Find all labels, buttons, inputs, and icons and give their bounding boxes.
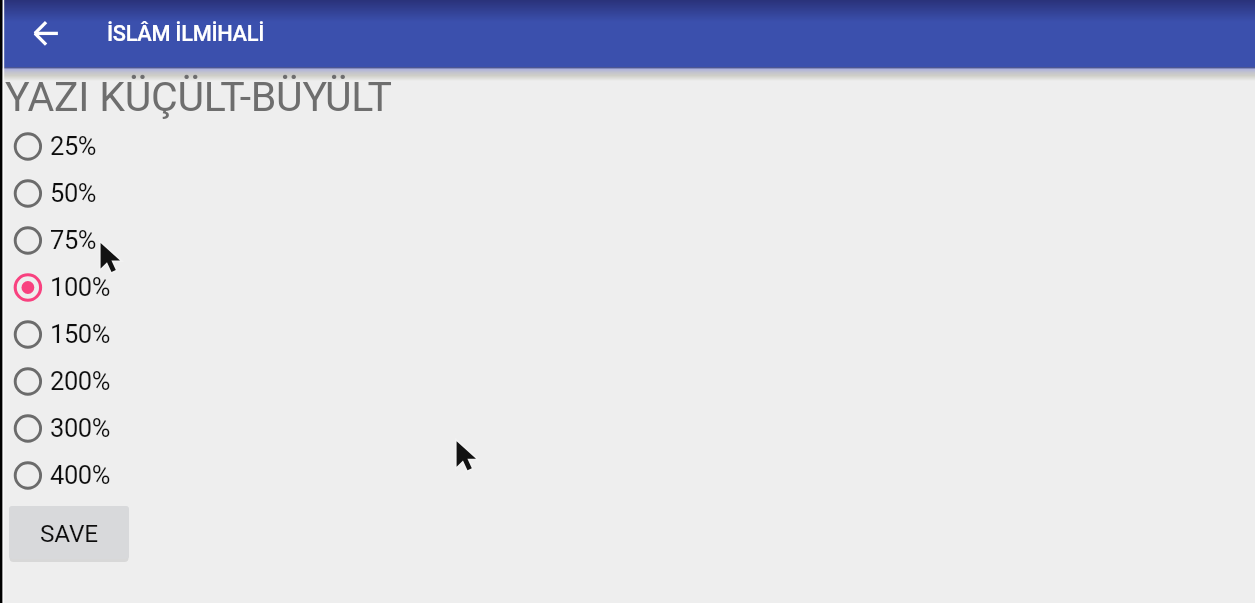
staticText: SAVE bbox=[40, 519, 98, 548]
staticText: 400% bbox=[50, 460, 110, 490]
button[interactable]: 50% bbox=[0, 170, 1255, 217]
button[interactable]: 25% bbox=[0, 123, 1255, 170]
button[interactable]: Back bbox=[26, 13, 67, 54]
staticText: 100% bbox=[50, 272, 110, 302]
staticText: 50% bbox=[50, 178, 96, 208]
button[interactable]: SAVE bbox=[9, 506, 129, 559]
staticText: 200% bbox=[50, 366, 110, 396]
staticText: YAZI KÜÇÜLT-BÜYÜLT bbox=[5, 73, 392, 121]
staticText: 150% bbox=[50, 319, 110, 349]
staticText: 300% bbox=[50, 413, 110, 443]
staticText: 75% bbox=[50, 225, 96, 255]
button[interactable]: 75% bbox=[0, 217, 1255, 264]
button[interactable]: 400% bbox=[0, 452, 1255, 499]
button[interactable]: 100% bbox=[0, 264, 1255, 311]
staticText: 25% bbox=[50, 131, 96, 161]
button[interactable]: 150% bbox=[0, 311, 1255, 358]
staticText: İSLÂM İLMİHALİ bbox=[107, 21, 265, 47]
button[interactable]: 200% bbox=[0, 358, 1255, 405]
button[interactable]: 300% bbox=[0, 405, 1255, 452]
